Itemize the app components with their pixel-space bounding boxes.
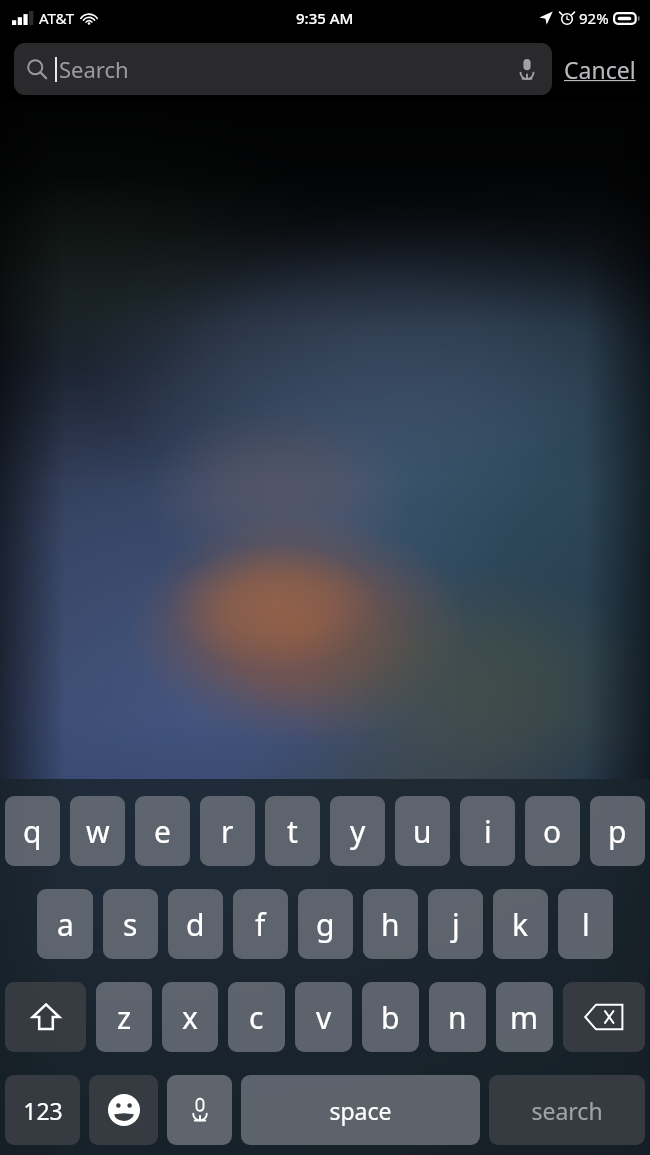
button[interactable]: o xyxy=(525,796,580,866)
button[interactable]: y xyxy=(330,796,385,866)
staticText: 123 xyxy=(23,1095,63,1126)
staticText: search xyxy=(531,1095,603,1126)
button[interactable]: Shift xyxy=(5,982,86,1052)
button[interactable]: a xyxy=(37,889,93,959)
button[interactable]: k xyxy=(493,889,548,959)
staticText: a xyxy=(57,904,74,945)
staticText: p xyxy=(608,811,627,852)
staticText: z xyxy=(117,997,132,1038)
button[interactable]: h xyxy=(363,889,418,959)
staticText: 92% xyxy=(579,8,609,28)
button[interactable]: u xyxy=(395,796,450,866)
staticText: h xyxy=(381,904,400,945)
staticText: Cancel xyxy=(564,54,636,85)
button[interactable]: b xyxy=(362,982,419,1052)
button[interactable]: v xyxy=(295,982,352,1052)
staticText: y xyxy=(350,811,366,852)
button[interactable]: g xyxy=(298,889,353,959)
button[interactable]: q xyxy=(5,796,60,866)
staticText: g xyxy=(316,904,335,945)
staticText: space xyxy=(329,1095,392,1126)
staticText: n xyxy=(448,997,467,1038)
button[interactable]: Backspace xyxy=(563,982,645,1052)
button[interactable]: i xyxy=(460,796,515,866)
staticText: x xyxy=(182,997,198,1038)
button[interactable]: Cancel xyxy=(562,48,638,91)
staticText: u xyxy=(413,811,432,852)
button[interactable]: Dictate xyxy=(167,1075,232,1145)
button[interactable]: e xyxy=(135,796,190,866)
staticText: i xyxy=(484,811,492,852)
button[interactable]: 123 xyxy=(5,1075,80,1145)
button[interactable]: Emoji xyxy=(89,1075,158,1145)
button[interactable]: s xyxy=(103,889,158,959)
staticText: q xyxy=(23,811,42,852)
staticText: 9:35 AM xyxy=(296,8,354,28)
staticText: c xyxy=(249,997,264,1038)
button[interactable]: search xyxy=(489,1075,645,1145)
staticText: m xyxy=(510,997,539,1038)
staticText: Search xyxy=(59,54,129,84)
button[interactable]: Search xyxy=(14,43,552,95)
staticText: f xyxy=(255,904,266,945)
staticText: t xyxy=(287,811,298,852)
staticText: b xyxy=(381,997,400,1038)
button[interactable]: l xyxy=(558,889,613,959)
button[interactable]: j xyxy=(428,889,483,959)
button[interactable]: z xyxy=(96,982,152,1052)
button[interactable]: c xyxy=(228,982,285,1052)
button[interactable]: t xyxy=(265,796,320,866)
button[interactable]: p xyxy=(590,796,645,866)
staticText: k xyxy=(512,904,529,945)
staticText: r xyxy=(221,811,234,852)
button[interactable]: n xyxy=(429,982,486,1052)
staticText: e xyxy=(154,811,171,852)
staticText: s xyxy=(123,904,138,945)
staticText: o xyxy=(543,811,562,852)
staticText: w xyxy=(86,811,110,852)
button[interactable]: m xyxy=(496,982,553,1052)
button[interactable]: d xyxy=(168,889,223,959)
button[interactable]: w xyxy=(70,796,125,866)
button[interactable]: f xyxy=(233,889,288,959)
button[interactable]: Voice search xyxy=(514,56,540,82)
staticText: d xyxy=(186,904,205,945)
staticText: AT&T xyxy=(39,8,74,28)
staticText: l xyxy=(582,904,590,945)
button[interactable]: space xyxy=(241,1075,480,1145)
staticText: v xyxy=(316,997,332,1038)
button[interactable]: x xyxy=(162,982,218,1052)
button[interactable]: r xyxy=(200,796,255,866)
staticText: j xyxy=(452,904,460,945)
